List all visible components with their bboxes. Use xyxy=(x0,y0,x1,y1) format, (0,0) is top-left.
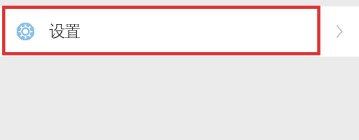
button[interactable]: 设置 xyxy=(0,6,359,56)
other: Open settings xyxy=(336,25,343,38)
staticText: 设置 xyxy=(49,22,81,42)
